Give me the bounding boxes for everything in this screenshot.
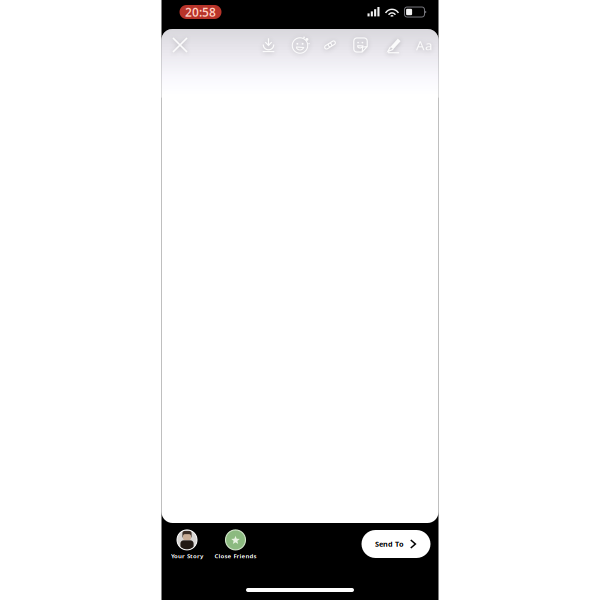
button[interactable]: Close [166,31,194,59]
button[interactable]: Send To [361,530,430,558]
button[interactable]: Draw [379,31,407,59]
button[interactable]: Save [254,31,282,59]
staticText: Send To [375,539,404,549]
staticText: Close Friends [214,552,256,560]
button[interactable]: Your Story [158,529,216,561]
button[interactable]: Effects [286,31,314,59]
staticText: 20:58 [185,4,216,20]
staticText: Aa [416,36,432,54]
button[interactable]: Stickers [346,31,374,59]
button[interactable]: Link [316,31,344,59]
button[interactable]: Close Friends [203,529,267,561]
button[interactable]: Text [409,31,439,59]
staticText: Your Story [171,552,203,560]
